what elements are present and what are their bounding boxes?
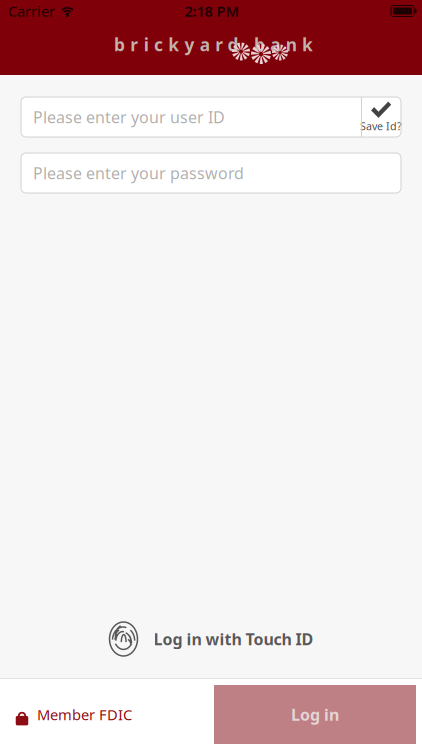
button[interactable]: Log in	[214, 685, 416, 744]
staticText: Please enter your password	[33, 162, 244, 184]
staticText: Log in	[291, 704, 339, 725]
button[interactable]: Member FDIC	[0, 679, 132, 750]
staticText: Please enter your user ID	[33, 106, 225, 128]
staticText: 2:18 PM	[184, 1, 239, 21]
staticText: Save Id?	[360, 119, 402, 133]
button[interactable]: Save ID	[361, 97, 401, 137]
staticText: brickyard bank	[114, 33, 313, 56]
staticText: Log in with Touch ID	[153, 628, 313, 650]
staticText: Member FDIC	[37, 705, 132, 724]
staticText: Carrier	[8, 1, 55, 21]
button[interactable]: Log in with Touch ID	[0, 600, 422, 678]
